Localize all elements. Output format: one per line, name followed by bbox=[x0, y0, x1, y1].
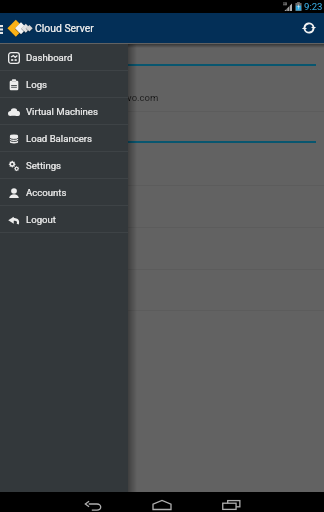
staticText: Virtual Machines bbox=[26, 106, 98, 117]
staticText: Logout bbox=[26, 214, 56, 225]
staticText: Load Balancers bbox=[26, 133, 93, 144]
button[interactable]: Open navigation drawer bbox=[0, 13, 8, 43]
button[interactable]: Logs bbox=[0, 71, 128, 98]
button[interactable]: Dashboard bbox=[0, 44, 128, 71]
staticText: 9:23 bbox=[304, 1, 323, 12]
button[interactable]: Virtual Machines bbox=[0, 98, 128, 125]
button[interactable]: Accounts bbox=[0, 179, 128, 206]
staticText: Dashboard bbox=[26, 52, 73, 63]
button[interactable]: Settings bbox=[0, 152, 128, 179]
button[interactable]: Recent apps bbox=[211, 492, 251, 512]
button[interactable]: Refresh bbox=[294, 13, 324, 43]
button[interactable]: Load Balancers bbox=[0, 125, 128, 152]
staticText: Accounts bbox=[26, 187, 67, 198]
button[interactable]: Back bbox=[73, 492, 113, 512]
staticText: server@cloudservo.com bbox=[56, 92, 159, 103]
staticText: Cloud Server bbox=[35, 22, 94, 34]
staticText: Logs bbox=[26, 79, 47, 90]
staticText: Settings bbox=[26, 160, 62, 171]
button[interactable]: Logout bbox=[0, 206, 128, 233]
button[interactable]: Home bbox=[142, 492, 182, 512]
